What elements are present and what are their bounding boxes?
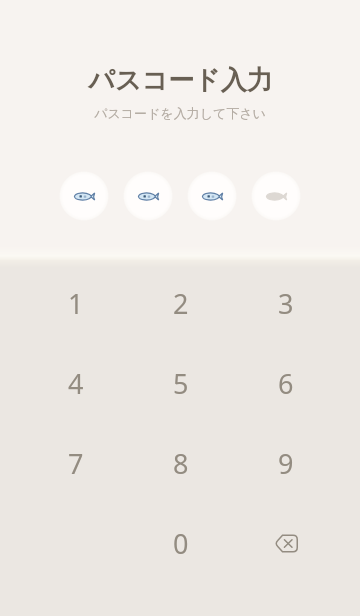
button[interactable]: 4 bbox=[23, 343, 128, 423]
staticText: 0 bbox=[173, 525, 189, 562]
other: Passcode digit 3 entered bbox=[186, 170, 238, 222]
other: Passcode digit 2 entered bbox=[122, 170, 174, 222]
button[interactable]: 8 bbox=[128, 423, 233, 503]
staticText: 8 bbox=[173, 445, 189, 482]
staticText: 9 bbox=[278, 445, 294, 482]
staticText: 7 bbox=[68, 445, 84, 482]
staticText: 2 bbox=[173, 285, 189, 322]
staticText: 6 bbox=[278, 365, 294, 402]
button[interactable]: 6 bbox=[233, 343, 338, 423]
button[interactable]: 3 bbox=[233, 263, 338, 343]
staticText: 4 bbox=[68, 365, 84, 402]
button[interactable]: 1 bbox=[23, 263, 128, 343]
button[interactable]: 7 bbox=[23, 423, 128, 503]
button[interactable]: 0 bbox=[128, 503, 233, 583]
staticText: 3 bbox=[278, 285, 294, 322]
other: Passcode digit 4 empty bbox=[250, 170, 302, 222]
staticText: 5 bbox=[173, 365, 189, 402]
staticText: パスコードを入力して下さい bbox=[94, 105, 266, 121]
other: Passcode digit 1 entered bbox=[58, 170, 110, 222]
staticText: パスコード入力 bbox=[88, 64, 273, 97]
button[interactable]: 5 bbox=[128, 343, 233, 423]
button[interactable]: 2 bbox=[128, 263, 233, 343]
staticText: 1 bbox=[68, 285, 84, 322]
other: Backspace bbox=[274, 534, 298, 553]
button[interactable]: 9 bbox=[233, 423, 338, 503]
button[interactable]: Backspace bbox=[233, 503, 338, 583]
